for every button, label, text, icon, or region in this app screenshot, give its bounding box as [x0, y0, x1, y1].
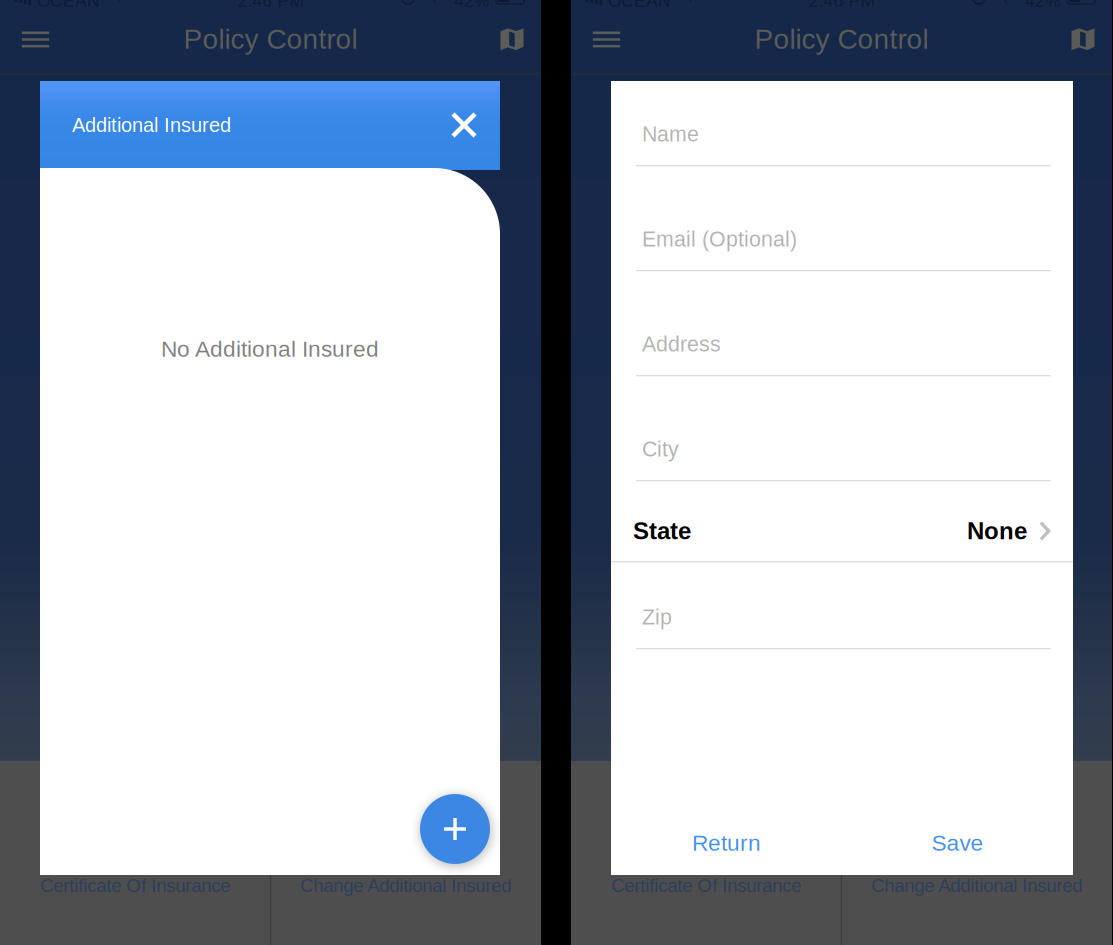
staticText: No Additional Insured [161, 336, 379, 362]
staticText: OCEAN [37, 0, 100, 10]
button[interactable]: Change Additional Insured [841, 761, 1112, 945]
staticText: Policy Control [183, 23, 357, 55]
button[interactable]: Change Additional Insured [270, 761, 541, 945]
button[interactable]: Save [842, 808, 1073, 878]
button[interactable]: Certificate Of Insurance [0, 761, 270, 945]
staticText: Email (Optional) [642, 227, 797, 251]
staticText: Policy Control [754, 23, 928, 55]
button[interactable]: Add additional insured [420, 794, 490, 864]
staticText: OCEAN [608, 0, 671, 10]
staticText: Return [692, 830, 761, 856]
button[interactable]: Map [483, 11, 541, 67]
staticText: Name [642, 122, 699, 146]
staticText: Change Additional Insured [300, 875, 511, 896]
button[interactable]: Map [1054, 11, 1112, 67]
staticText: Zip [642, 605, 672, 629]
staticText: Additional Insured [72, 114, 231, 136]
staticText: Certificate Of Insurance [40, 875, 230, 896]
staticText: Address [642, 332, 721, 356]
staticText: City [642, 437, 679, 461]
staticText: 2:46 PM [808, 0, 874, 10]
button[interactable]: State [611, 482, 1073, 562]
button[interactable]: Menu [571, 11, 642, 67]
staticText: ᐧ [666, 0, 670, 11]
staticText: 42% [1025, 0, 1060, 10]
staticText: 42% [454, 0, 489, 10]
button[interactable]: Return [611, 808, 842, 878]
staticText: None [967, 518, 1027, 544]
button[interactable]: Certificate Of Insurance [571, 761, 841, 945]
staticText: State [633, 518, 691, 544]
button[interactable]: Close [441, 102, 487, 148]
staticText: Save [931, 830, 983, 856]
staticText: 2:46 PM [237, 0, 303, 10]
staticText: ᐧ [95, 0, 99, 11]
button[interactable]: Menu [0, 11, 71, 67]
staticText: Change Additional Insured [871, 875, 1082, 896]
staticText: Certificate Of Insurance [611, 875, 801, 896]
